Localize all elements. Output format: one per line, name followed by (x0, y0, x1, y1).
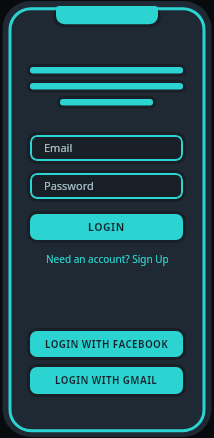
button[interactable]: Email (30, 135, 183, 161)
button[interactable]: LOGIN WITH GMAIL (30, 367, 183, 394)
staticText: LOGIN WITH FACEBOOK (45, 338, 169, 351)
button[interactable]: LOGIN (30, 214, 183, 240)
button[interactable]: LOGIN WITH FACEBOOK (30, 331, 183, 357)
staticText: LOGIN WITH GMAIL (55, 374, 158, 387)
staticText: Need an account? Sign Up (46, 252, 169, 266)
staticText: Password (44, 178, 94, 193)
button[interactable]: Need an account? Sign Up (0, 252, 214, 266)
staticText: LOGIN (88, 220, 125, 234)
staticText: Email (44, 140, 73, 155)
button[interactable]: Password (30, 173, 183, 199)
